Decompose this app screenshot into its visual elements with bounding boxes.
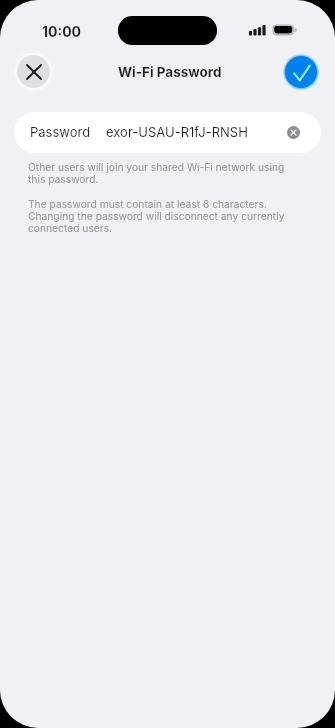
button[interactable]: Clear text — [287, 126, 300, 139]
staticText: Other users will join your shared Wi-Fi … — [28, 161, 286, 185]
button[interactable]: Save — [285, 56, 317, 88]
staticText: exor-USAU-R1fJ-RNSH — [106, 124, 248, 140]
button[interactable]: Close — [17, 55, 50, 88]
staticText: The password must contain at least 8 cha… — [28, 198, 286, 234]
staticText: Password — [30, 124, 91, 140]
staticText: Wi-Fi Password — [118, 64, 222, 80]
button[interactable]: Password — [14, 112, 321, 153]
staticText: 10:00 — [42, 23, 82, 40]
